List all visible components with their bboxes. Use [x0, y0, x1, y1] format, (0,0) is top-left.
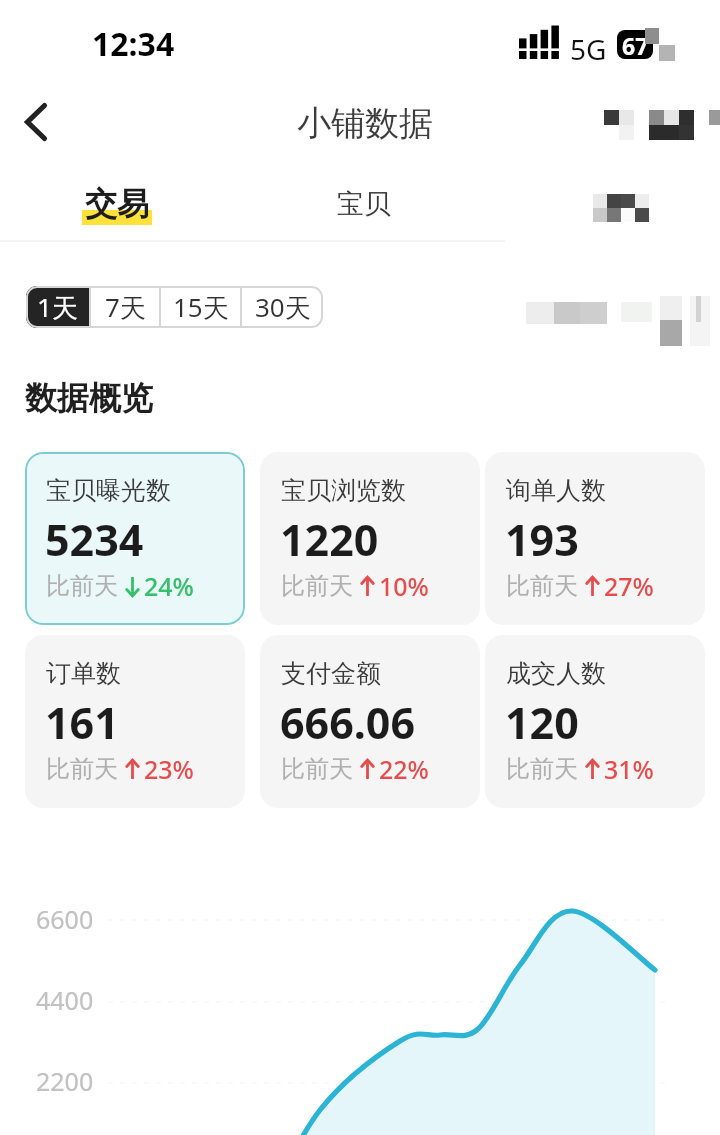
button[interactable]: 7天 — [91, 286, 159, 328]
button[interactable]: 宝贝曝光数 — [25, 452, 245, 625]
staticText: 2200 — [36, 1064, 94, 1098]
staticText: 120 — [505, 693, 579, 752]
staticText: 10% — [379, 569, 429, 603]
staticText: 4400 — [36, 983, 94, 1017]
button[interactable]: 交易 — [40, 170, 190, 236]
staticText: 1220 — [280, 510, 379, 569]
staticText: 5234 — [45, 510, 144, 569]
staticText: 22% — [379, 752, 429, 786]
staticText: 比前天 — [281, 754, 353, 784]
staticText: 比前天 — [46, 754, 118, 784]
staticText: 宝贝曝光数 — [46, 475, 171, 506]
staticText: 193 — [505, 510, 579, 569]
button[interactable]: 宝贝 — [300, 170, 430, 236]
staticText: 666.06 — [280, 693, 416, 752]
button[interactable]: 宝贝浏览数 — [260, 452, 480, 625]
staticText: 比前天 — [46, 571, 118, 601]
staticText: 交易 — [85, 184, 149, 224]
staticText: 15天 — [173, 289, 229, 325]
staticText: 询单人数 — [506, 475, 606, 506]
staticText: 宝贝 — [337, 187, 391, 221]
staticText: 订单数 — [46, 658, 121, 689]
staticText: 比前天 — [281, 571, 353, 601]
staticText: 支付金额 — [281, 658, 381, 689]
staticText: 成交人数 — [506, 658, 606, 689]
staticText: 67 — [622, 30, 649, 59]
button[interactable]: 支付金额 — [260, 635, 480, 808]
staticText: 宝贝浏览数 — [281, 475, 406, 506]
button[interactable]: Back — [8, 94, 64, 150]
button[interactable]: 30天 — [242, 286, 323, 328]
staticText: 30天 — [255, 289, 311, 325]
staticText: 161 — [45, 693, 119, 752]
staticText: 比前天 — [506, 571, 578, 601]
staticText: 1天 — [37, 289, 78, 325]
staticText: 23% — [144, 752, 194, 786]
staticText: 小铺数据 — [297, 102, 433, 145]
staticText: 5G — [570, 30, 607, 68]
staticText: 比前天 — [506, 754, 578, 784]
button[interactable]: 1天 — [26, 286, 89, 328]
staticText: 12:34 — [92, 22, 175, 66]
staticText: 6600 — [36, 902, 94, 936]
staticText: 27% — [604, 569, 654, 603]
button[interactable]: 询单人数 — [485, 452, 705, 625]
button[interactable]: 订单数 — [25, 635, 245, 808]
staticText: 31% — [604, 752, 654, 786]
button[interactable]: 成交人数 — [485, 635, 705, 808]
staticText: 7天 — [105, 289, 146, 325]
staticText: 24% — [144, 569, 194, 603]
staticText: 数据概览 — [25, 378, 153, 418]
button[interactable]: 15天 — [161, 286, 240, 328]
